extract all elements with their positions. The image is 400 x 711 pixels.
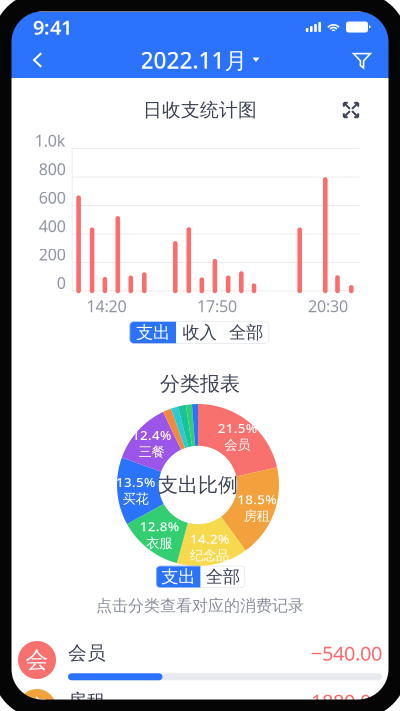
staticText: 1.0k	[35, 130, 66, 151]
staticText: 20:30	[308, 295, 348, 317]
staticText: 400	[39, 215, 66, 237]
staticText: 全部	[206, 566, 240, 587]
button[interactable]: 房	[0, 680, 400, 711]
staticText: 12.8%	[140, 517, 179, 535]
staticText: 200	[39, 244, 66, 265]
staticText: 9:41	[33, 14, 72, 40]
button[interactable]: 支出	[130, 321, 176, 343]
staticText: 会	[25, 646, 48, 674]
button[interactable]: 支出	[156, 566, 201, 588]
staticText: 买花	[122, 491, 148, 507]
button[interactable]: 会	[0, 632, 400, 688]
staticText: 17:50	[197, 295, 237, 317]
button[interactable]: 全部	[223, 321, 269, 343]
staticText: 房租	[244, 508, 270, 524]
staticText: 800	[39, 158, 66, 180]
staticText: 点击分类查看对应的消费记录	[96, 596, 304, 615]
button[interactable]: 2022.11月	[132, 39, 267, 81]
staticText: 18.5%	[237, 490, 276, 508]
staticText: 13.5%	[116, 473, 155, 491]
staticText: 支出	[136, 322, 170, 343]
staticText: 支出	[161, 566, 195, 587]
staticText: 全部	[229, 322, 263, 343]
staticText: 分类报表	[160, 371, 240, 396]
staticText: 支出比例	[158, 473, 238, 497]
staticText: 0	[57, 272, 66, 293]
staticText: 14.2%	[190, 530, 229, 547]
staticText: 21.5%	[218, 419, 257, 437]
staticText: −540.00	[311, 640, 382, 666]
staticText: 会员	[224, 437, 250, 453]
staticText: 衣服	[146, 535, 172, 551]
staticText: −1880.00	[300, 688, 382, 711]
staticText: 会员	[68, 641, 106, 664]
button[interactable]: 全部	[201, 566, 245, 588]
staticText: 纪念品	[190, 547, 229, 564]
staticText: 房租	[68, 689, 106, 711]
staticText: 14:20	[86, 295, 126, 317]
staticText: 收入	[182, 322, 216, 343]
staticText: 12.4%	[132, 426, 171, 444]
staticText: 房	[25, 694, 48, 711]
staticText: 日收支统计图	[143, 98, 257, 121]
button[interactable]: 收入	[176, 321, 223, 343]
staticText: 600	[39, 187, 66, 208]
button[interactable]: Filter	[343, 40, 381, 80]
button[interactable]: Back	[19, 40, 57, 80]
staticText: 三餐	[138, 444, 164, 460]
button[interactable]: Fullscreen	[334, 93, 368, 127]
staticText: 2022.11月	[140, 45, 247, 75]
